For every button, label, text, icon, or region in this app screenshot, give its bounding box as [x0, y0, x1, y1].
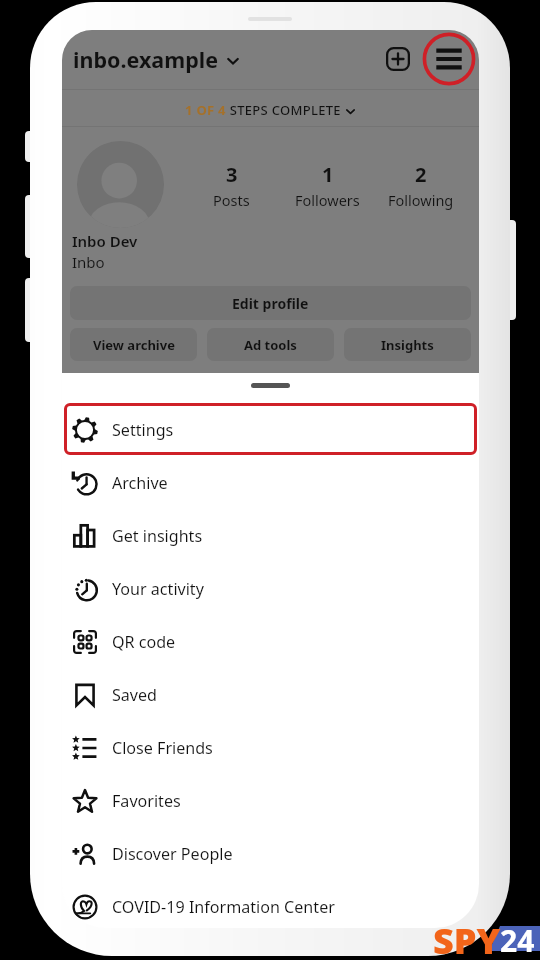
staticText: QR code [112, 631, 176, 653]
staticText: STEPS COMPLETE [226, 101, 341, 119]
button[interactable]: Discover People [62, 827, 479, 880]
staticText: Settings [112, 419, 174, 441]
button[interactable]: Ad tools [207, 328, 334, 361]
staticText: Followers [295, 190, 360, 210]
staticText: Close Friends [112, 737, 213, 759]
staticText: Inbo [72, 252, 105, 272]
button[interactable]: QR code [62, 615, 479, 668]
button[interactable]: 1 [279, 161, 375, 210]
staticText: Edit profile [232, 294, 309, 313]
staticText: 24 [500, 920, 535, 960]
button[interactable]: Menu [422, 32, 476, 86]
staticText: 1 OF 4 [185, 101, 226, 119]
button[interactable]: Insights [344, 328, 471, 361]
button[interactable]: inbo.example [73, 44, 240, 74]
staticText: Your activity [112, 578, 204, 600]
button[interactable]: Archive [62, 456, 479, 509]
staticText: Ad tools [244, 336, 297, 354]
button[interactable]: 2 [373, 161, 469, 210]
staticText: Favorites [112, 790, 181, 812]
staticText: SPY [433, 916, 501, 960]
staticText: 3 [226, 161, 238, 188]
button[interactable]: View archive [70, 328, 197, 361]
button[interactable]: Your activity [62, 562, 479, 615]
staticText: inbo.example [73, 45, 218, 74]
staticText: Get insights [112, 525, 203, 547]
button[interactable]: 3 [183, 161, 279, 210]
button[interactable]: Favorites [62, 774, 479, 827]
staticText: Insights [381, 336, 434, 354]
staticText: 2 [415, 161, 427, 188]
button[interactable] [77, 141, 164, 228]
staticText: View archive [93, 336, 175, 354]
button[interactable]: Close Friends [62, 721, 479, 774]
button[interactable]: Edit profile [70, 286, 471, 320]
staticText: COVID-19 Information Center [112, 896, 335, 918]
button[interactable]: Get insights [62, 509, 479, 562]
button[interactable]: New post [382, 43, 414, 75]
staticText: Posts [213, 190, 250, 210]
staticText: Archive [112, 472, 168, 494]
staticText: Discover People [112, 843, 233, 865]
staticText: Saved [112, 684, 158, 706]
button[interactable]: Settings [62, 403, 479, 456]
staticText: 1 [322, 161, 334, 188]
button[interactable]: 1 OF 4 [62, 98, 479, 122]
staticText: Inbo Dev [72, 231, 138, 251]
button[interactable]: COVID-19 Information Center [62, 880, 479, 928]
button[interactable]: Saved [62, 668, 479, 721]
staticText: Following [388, 190, 454, 210]
